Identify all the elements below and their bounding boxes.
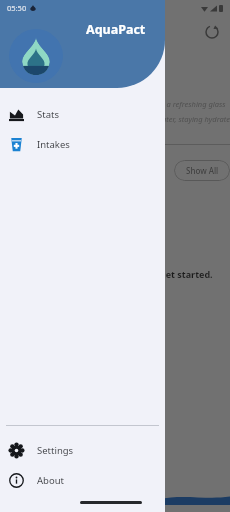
staticText: Show All — [186, 165, 219, 176]
staticText: get started. — [160, 268, 213, 280]
staticText: Settings — [37, 444, 74, 457]
button[interactable]: About — [0, 465, 165, 495]
staticText: Intakes — [37, 138, 70, 151]
staticText: Have a refreshing glass — [148, 99, 226, 109]
staticText: About — [37, 474, 64, 487]
staticText: of water, staying hydrated — [148, 114, 230, 124]
button[interactable]: Settings — [0, 435, 165, 465]
button[interactable]: Stats — [0, 99, 165, 129]
staticText: AquaPact — [86, 21, 146, 38]
button[interactable]: Intakes — [0, 129, 165, 159]
button[interactable]: Show All — [174, 160, 230, 181]
staticText: 05:50 — [7, 3, 27, 13]
staticText: Stats — [37, 108, 59, 121]
button[interactable]: Refresh — [202, 22, 222, 42]
